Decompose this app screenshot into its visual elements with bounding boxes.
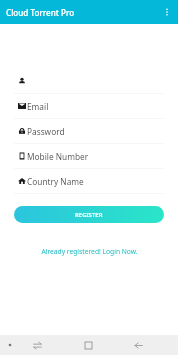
button[interactable]: Already registered! Login Now. xyxy=(41,247,138,256)
staticText: REGISTER xyxy=(75,211,103,219)
button[interactable]: Email xyxy=(0,94,178,118)
staticText: Country Name xyxy=(27,176,84,187)
button[interactable]: Password xyxy=(0,119,178,143)
button[interactable]: REGISTER xyxy=(14,206,164,223)
button[interactable] xyxy=(0,69,178,93)
button[interactable]: Country Name xyxy=(0,169,178,193)
button[interactable]: Home xyxy=(80,335,96,355)
button[interactable]: Recents xyxy=(29,335,45,355)
button[interactable]: More options xyxy=(156,0,178,24)
staticText: Mobile Number xyxy=(27,151,89,162)
staticText: Email xyxy=(27,101,49,112)
button[interactable]: Mobile Number xyxy=(0,144,178,168)
button[interactable]: Assistant xyxy=(2,335,18,355)
staticText: Password xyxy=(27,126,65,137)
staticText: Cloud Torrent Pro xyxy=(6,7,156,18)
button[interactable]: Back xyxy=(130,335,146,355)
